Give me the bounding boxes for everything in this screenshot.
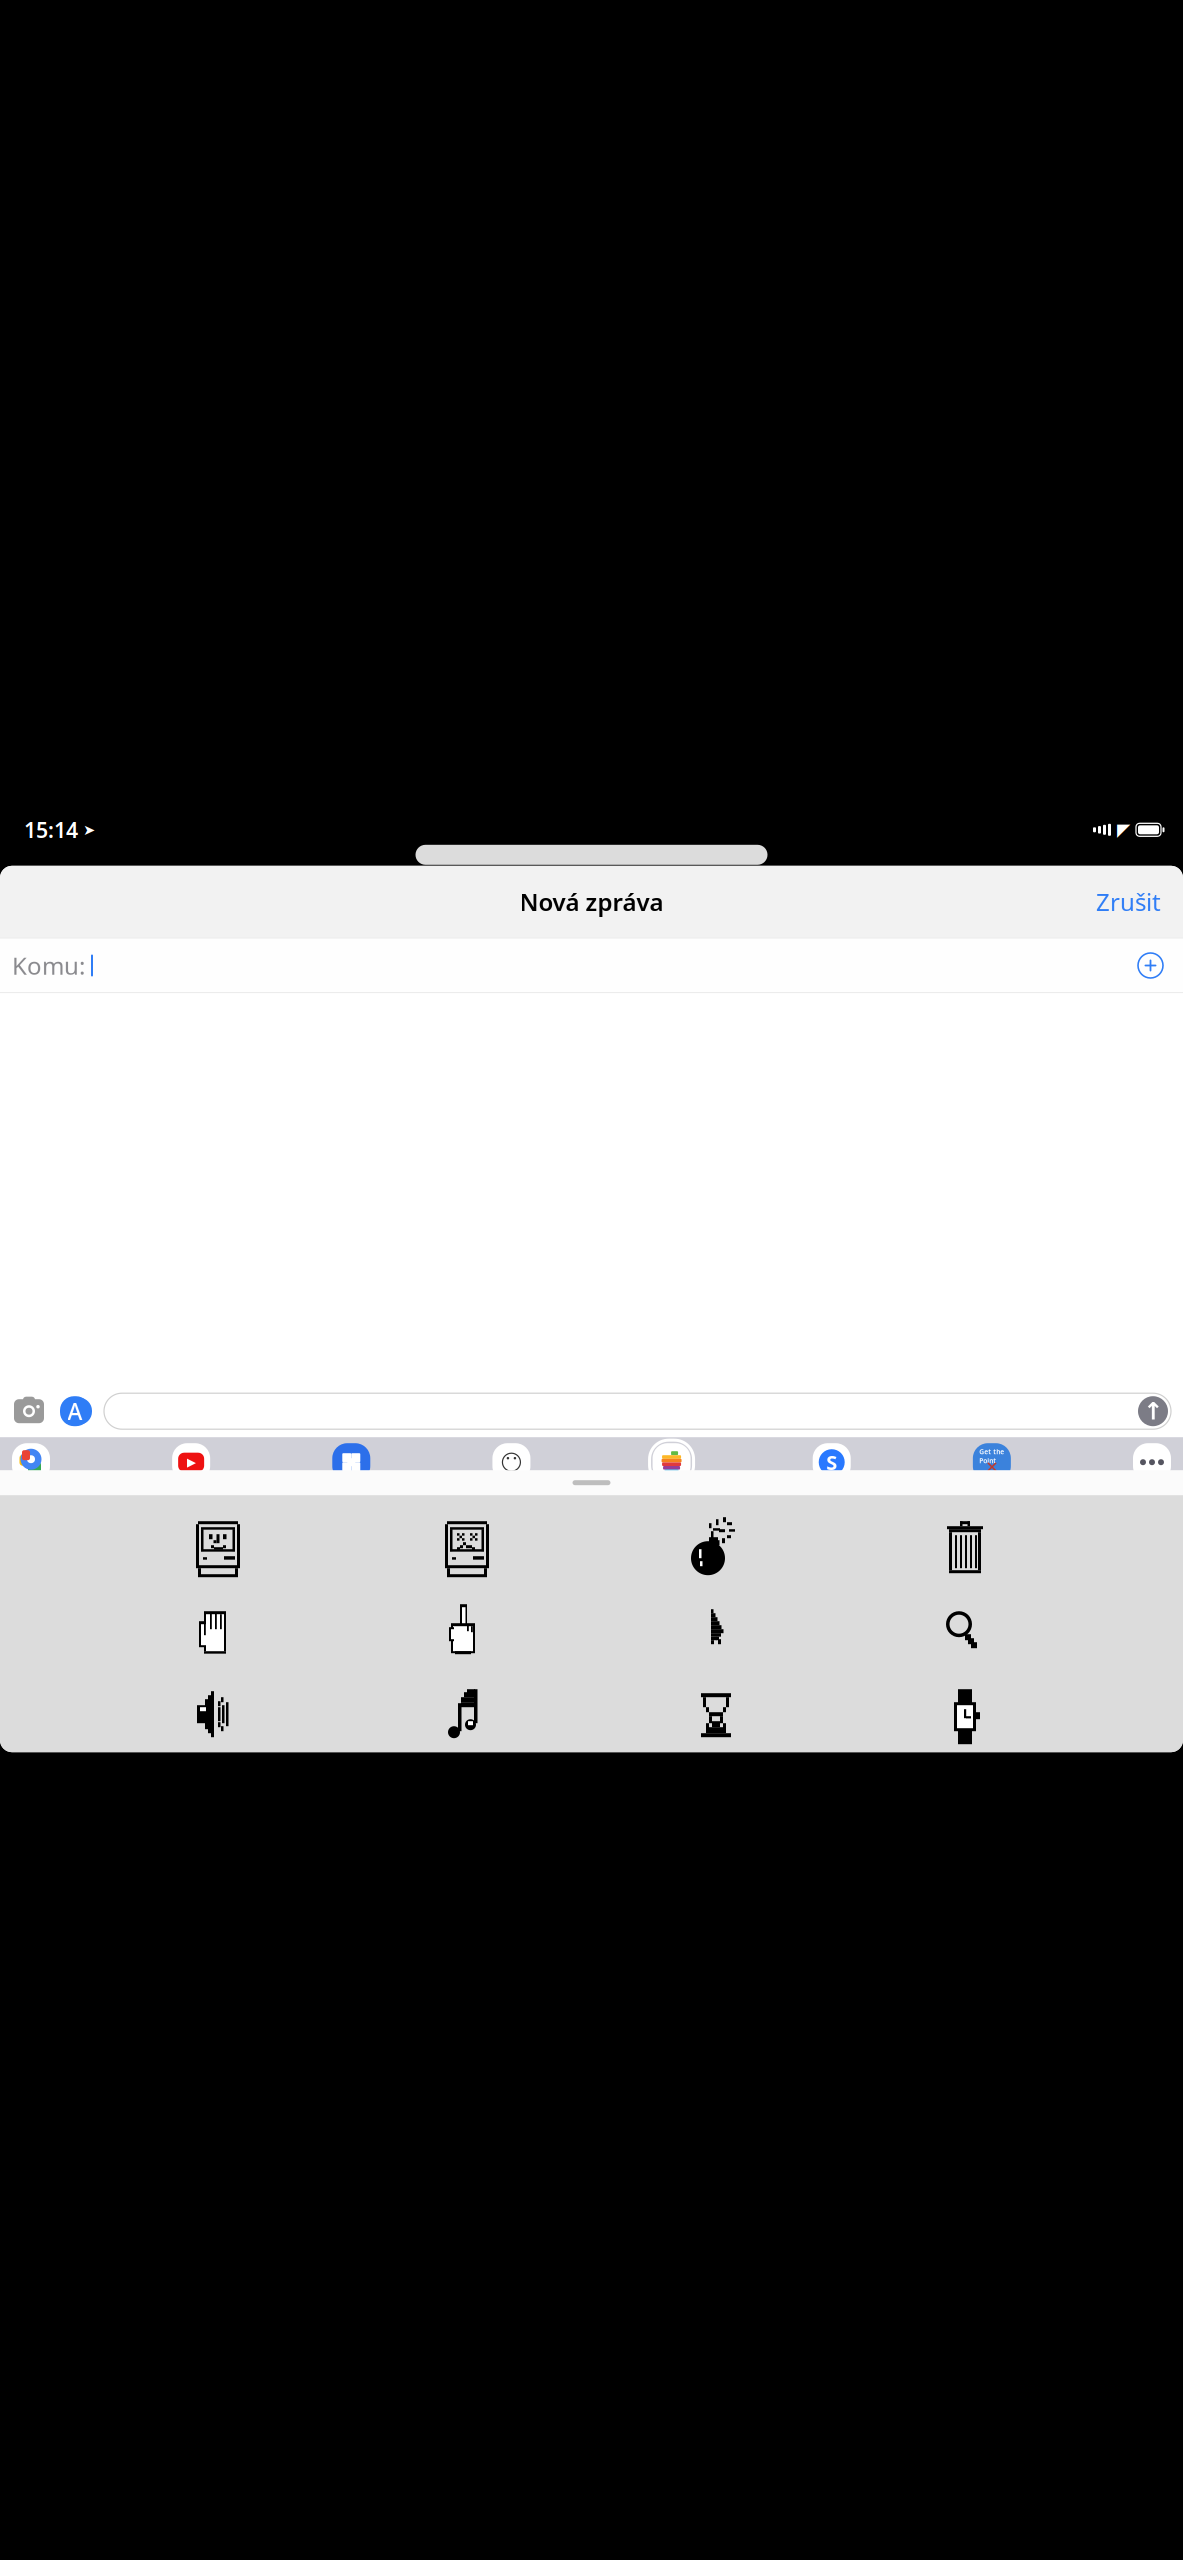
button[interactable]: Classic Mac stickers bbox=[653, 1443, 691, 1481]
button[interactable]: Camera bbox=[0, 1395, 46, 1427]
staticText: S bbox=[826, 1449, 837, 1475]
button[interactable]: Zrušit bbox=[1096, 876, 1183, 928]
staticText: ◤ bbox=[1117, 820, 1130, 840]
button[interactable]: Dropbox bbox=[332, 1443, 370, 1481]
staticText: Komu: bbox=[12, 950, 85, 981]
staticText: A bbox=[67, 1396, 82, 1426]
staticText: 15:14 bbox=[24, 816, 78, 844]
button[interactable]: Get the Point bbox=[973, 1443, 1011, 1481]
button[interactable]: Shazam bbox=[813, 1443, 851, 1481]
staticText: Zrušit bbox=[1096, 886, 1161, 918]
button[interactable]: Send bbox=[1138, 1396, 1168, 1426]
staticText: ✕ bbox=[985, 1458, 998, 1476]
staticText: ▶ bbox=[187, 1455, 196, 1469]
staticText: ➤ bbox=[83, 821, 95, 838]
button[interactable]: YouTube bbox=[172, 1443, 210, 1481]
staticText: ↑ bbox=[1143, 1398, 1163, 1425]
button[interactable]: Llama stickers bbox=[492, 1443, 530, 1481]
button[interactable]: Komu: bbox=[0, 938, 1183, 992]
button[interactable]: Google Maps bbox=[12, 1443, 50, 1481]
staticText: Nová zpráva bbox=[519, 886, 663, 918]
button[interactable]: App Store bbox=[56, 1395, 94, 1427]
staticText: Get the Point bbox=[979, 1447, 1004, 1465]
button[interactable]: More apps bbox=[1133, 1443, 1171, 1481]
